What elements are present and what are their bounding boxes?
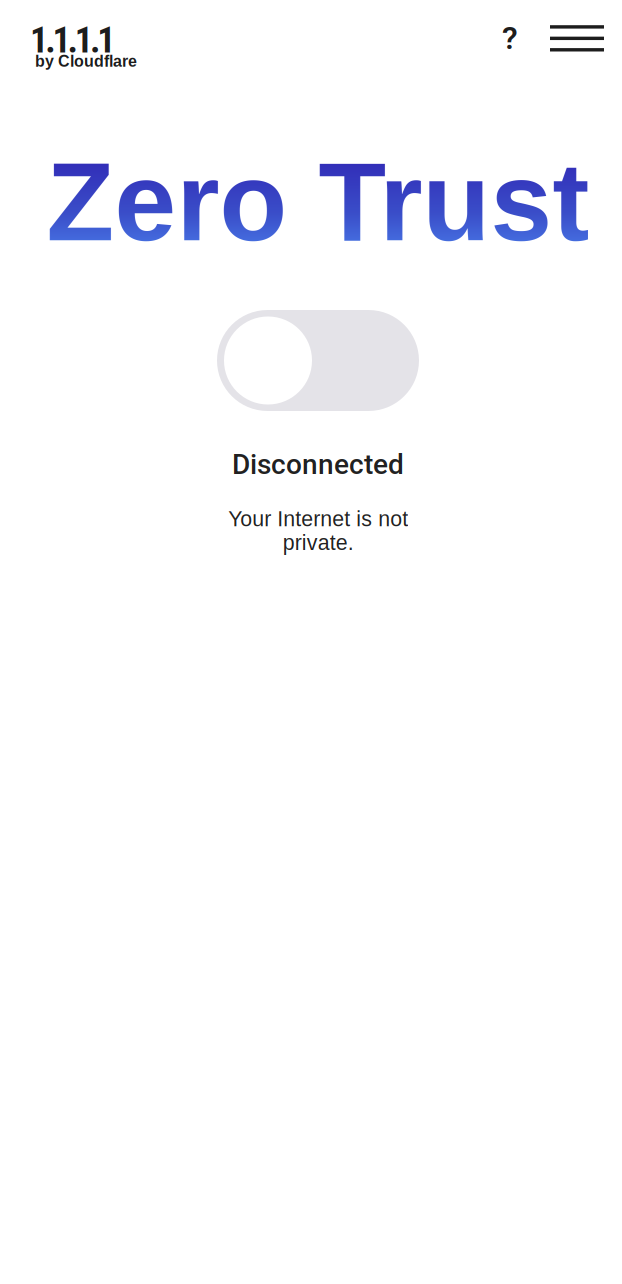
staticText: by Cloudflare [35, 52, 137, 70]
button[interactable]: Help [488, 16, 532, 60]
button[interactable]: Menu [550, 16, 604, 60]
staticText: 1.1.1.1 [30, 19, 115, 61]
staticText: Your Internet is not private. [228, 507, 408, 554]
staticText: Disconnected [232, 448, 404, 481]
staticText: ? [502, 19, 518, 57]
button[interactable]: Connection toggle, off [217, 310, 419, 411]
